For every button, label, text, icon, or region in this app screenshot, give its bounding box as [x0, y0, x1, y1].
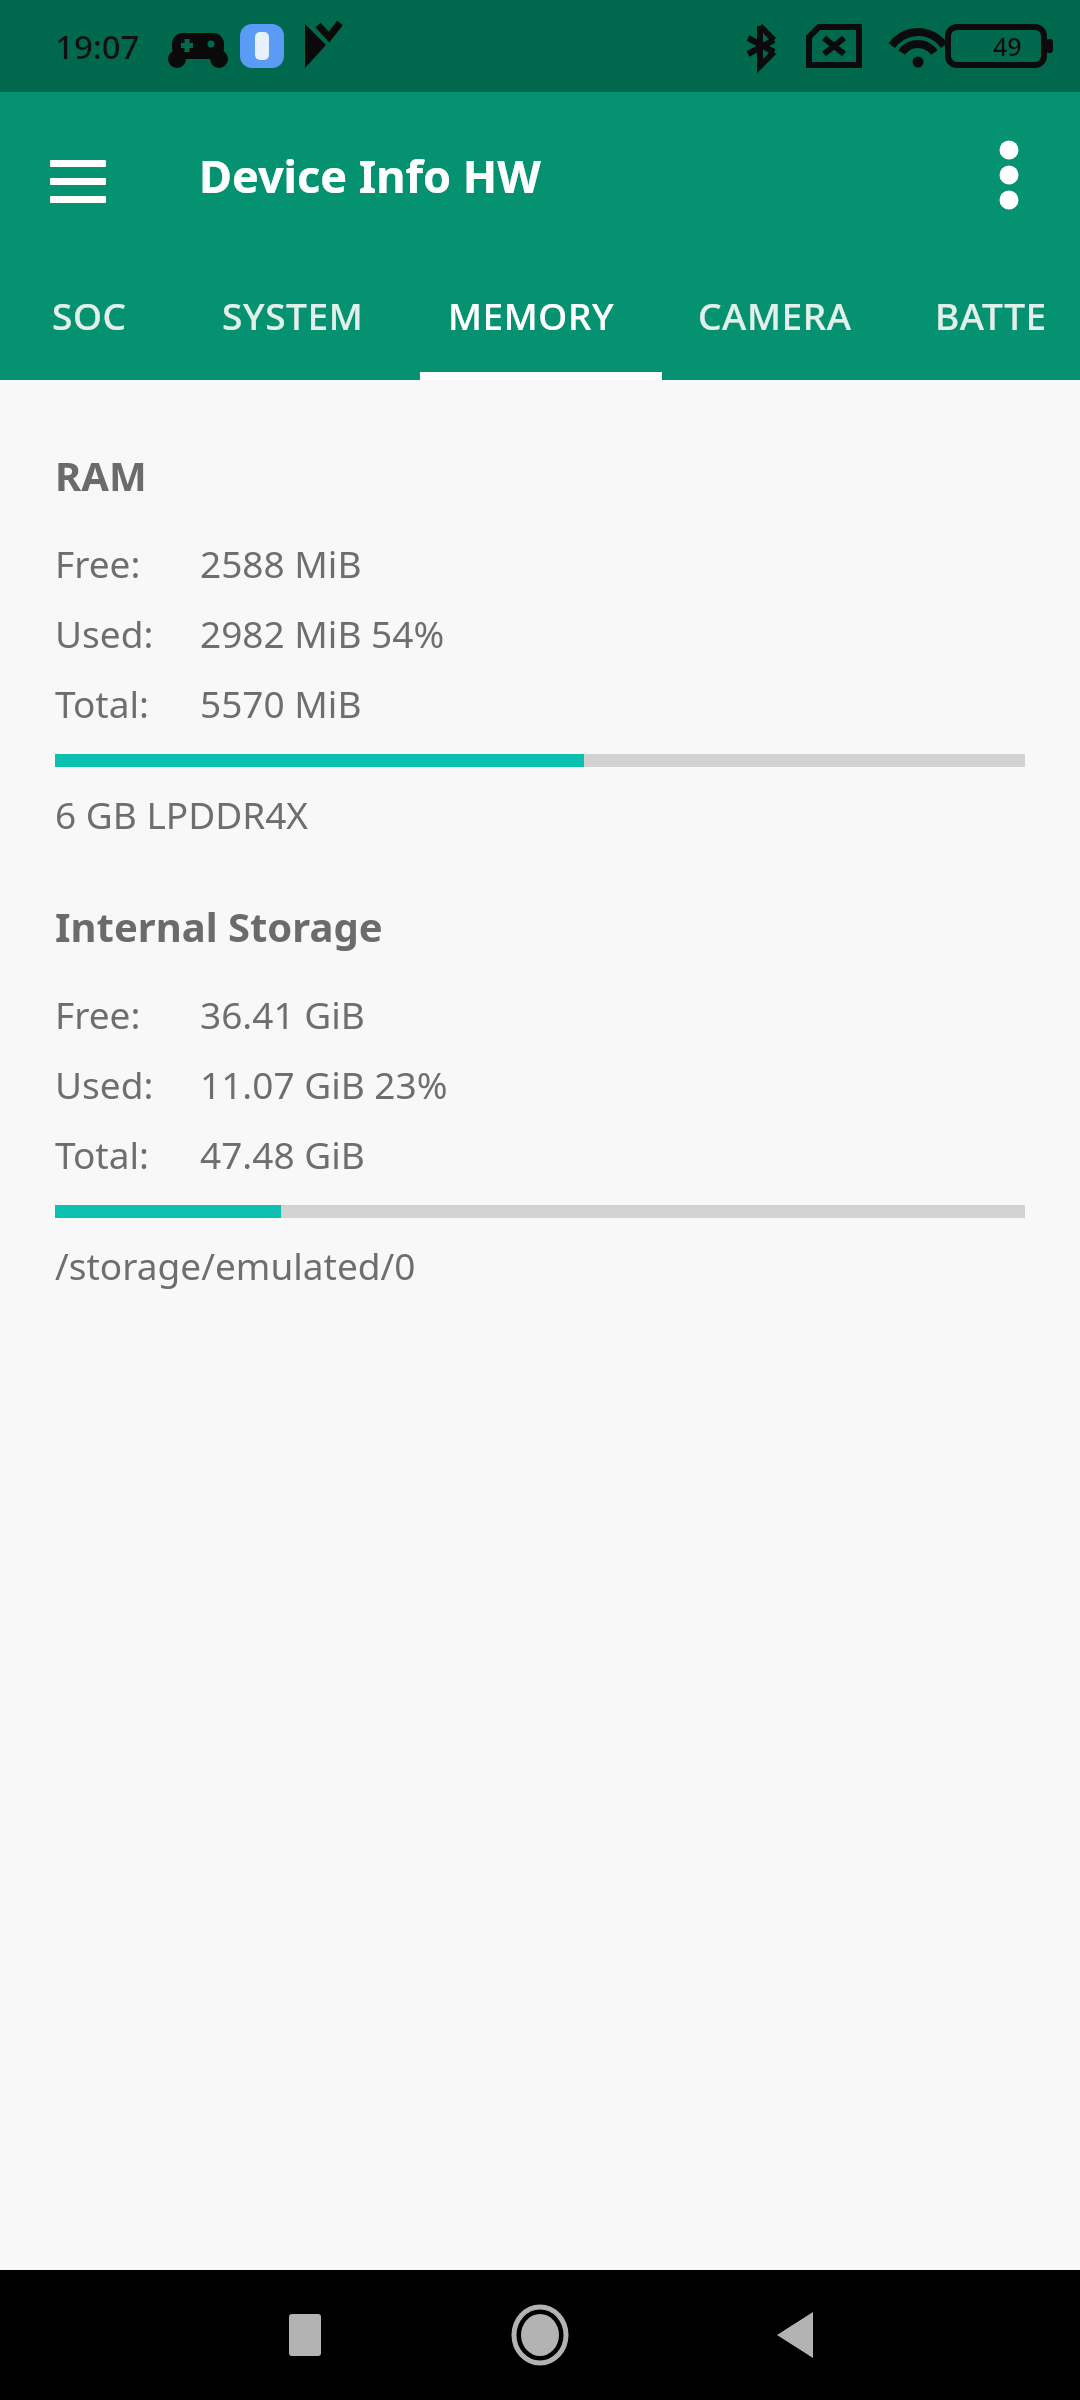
button[interactable]: CAMERA — [668, 258, 882, 380]
staticText: Free: — [55, 989, 200, 1039]
button[interactable]: MEMORY — [418, 258, 645, 380]
staticText: SOC — [52, 290, 127, 340]
staticText: Used: — [55, 1059, 200, 1109]
staticText: 49 — [993, 29, 1022, 63]
staticText: 2588 MiB — [200, 538, 362, 588]
staticText: 11.07 GiB 23% — [200, 1059, 448, 1109]
staticText: Total: — [55, 1129, 200, 1179]
staticText: BATTERY — [935, 290, 1050, 340]
staticText: CAMERA — [698, 290, 852, 340]
staticText: 47.48 GiB — [200, 1129, 365, 1179]
staticText: Total: — [55, 678, 200, 728]
staticText: 6 GB LPDDR4X — [55, 789, 309, 839]
staticText: Used: — [55, 608, 200, 658]
button[interactable]: More options — [954, 115, 1064, 235]
staticText: /storage/emulated/0 — [55, 1240, 416, 1290]
button[interactable]: Home — [480, 2275, 600, 2395]
staticText: 2982 MiB 54% — [200, 608, 445, 658]
staticText: Internal Storage — [55, 899, 383, 953]
staticText: RAM — [55, 448, 147, 502]
staticText: Free: — [55, 538, 200, 588]
staticText: SYSTEM — [222, 290, 364, 340]
staticText: 19:07 — [55, 24, 140, 69]
staticText: MEMORY — [448, 290, 615, 340]
button[interactable]: SYSTEM — [192, 258, 394, 380]
staticText: Device Info HW — [199, 145, 541, 206]
button[interactable]: Back — [740, 2280, 850, 2390]
button[interactable]: Open navigation menu — [18, 115, 138, 235]
button[interactable]: Recent apps — [250, 2280, 360, 2390]
staticText: 36.41 GiB — [200, 989, 365, 1039]
button[interactable]: BATTERY — [905, 258, 1080, 380]
button[interactable]: SOC — [22, 258, 157, 380]
staticText: 5570 MiB — [200, 678, 362, 728]
